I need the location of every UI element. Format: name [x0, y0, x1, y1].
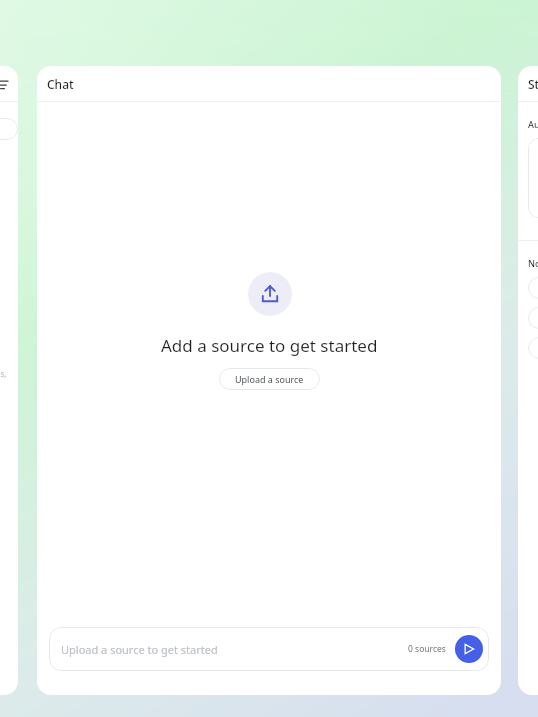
button[interactable]: Upload a source — [219, 368, 320, 390]
staticText: Upload a source — [235, 373, 304, 385]
button[interactable] — [528, 277, 538, 299]
button[interactable]: Upload a source to get started — [49, 627, 489, 671]
staticText: Studio — [528, 76, 538, 92]
button[interactable]: Filter sources — [0, 74, 12, 94]
button[interactable] — [528, 337, 538, 359]
staticText: Add a source to get started — [161, 334, 378, 357]
staticText: Upload a source to get started — [61, 642, 408, 657]
button[interactable]: Send — [455, 635, 483, 663]
staticText: 0 sources — [408, 643, 446, 655]
staticText: Chat — [47, 76, 74, 92]
button[interactable]: s — [0, 118, 18, 140]
button[interactable] — [528, 138, 538, 218]
staticText: Notes — [528, 257, 538, 269]
staticText: es, — [0, 368, 7, 379]
button[interactable] — [528, 307, 538, 329]
staticText: Audio Overview — [528, 118, 538, 130]
